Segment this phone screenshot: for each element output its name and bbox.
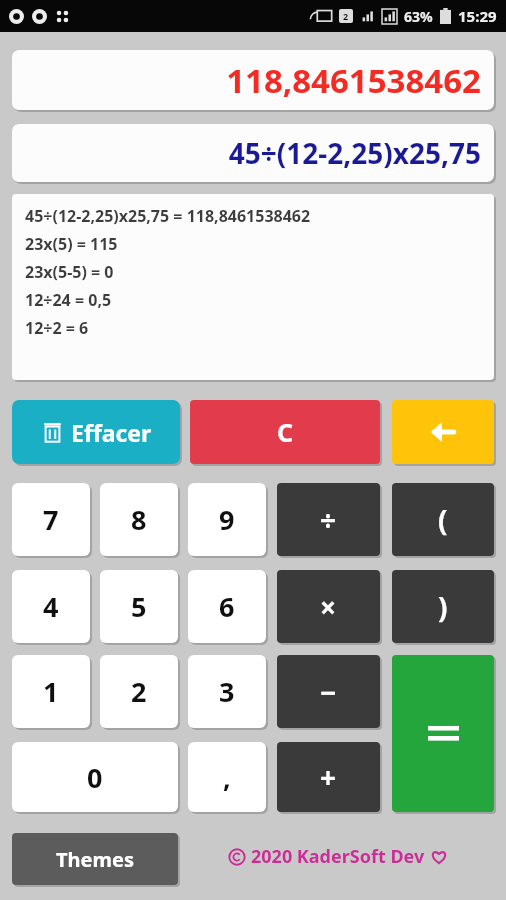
staticText: 23x(5-5) = 0 (25, 261, 114, 283)
staticText: , (223, 759, 231, 796)
staticText: 63% (404, 7, 433, 26)
button[interactable]: × (277, 570, 380, 643)
button[interactable]: − (277, 655, 380, 728)
staticText: 2 (131, 673, 147, 710)
button[interactable]: Themes (12, 833, 178, 885)
staticText: 45÷(12-2,25)x25,75 (12, 134, 481, 172)
button[interactable]: 5 (100, 570, 178, 643)
staticText: + (320, 758, 337, 796)
staticText: × (320, 588, 337, 626)
staticText: 3 (219, 673, 235, 710)
button[interactable]: 0 (12, 742, 178, 812)
button[interactable]: + (277, 742, 380, 812)
button[interactable]: ÷ (277, 483, 380, 556)
button[interactable]: Effacer (12, 400, 180, 464)
staticText: 12÷24 = 0,5 (25, 289, 112, 311)
button[interactable]: Equals (392, 655, 494, 812)
button[interactable]: ( (392, 483, 494, 556)
staticText: 4 (43, 588, 59, 625)
staticText: 12÷2 = 6 (25, 317, 89, 339)
button[interactable]: 3 (188, 655, 266, 728)
staticText: 9 (219, 501, 235, 538)
staticText: 1 (43, 673, 59, 710)
staticText: ) (438, 588, 448, 626)
staticText: 0 (87, 759, 103, 796)
staticText: Effacer (71, 417, 152, 448)
staticText: 2 (343, 10, 349, 22)
staticText: ÷ (320, 501, 337, 539)
staticText: 45÷(12-2,25)x25,75 = 118,8461538462 (25, 205, 311, 227)
staticText: 5 (131, 588, 147, 625)
staticText: 7 (43, 501, 59, 538)
button[interactable]: 1 (12, 655, 90, 728)
staticText: − (320, 673, 337, 711)
staticText: 8 (131, 501, 147, 538)
button[interactable]: 2020 KaderSoft Dev (228, 844, 448, 869)
button[interactable]: C (190, 400, 380, 464)
staticText: 2020 KaderSoft Dev (251, 844, 425, 869)
staticText: 23x(5) = 115 (25, 233, 118, 255)
staticText: C (277, 415, 294, 449)
button[interactable]: Backspace (392, 400, 494, 464)
staticText: ( (438, 501, 448, 539)
button[interactable]: 4 (12, 570, 90, 643)
button[interactable]: 2 (100, 655, 178, 728)
staticText: 118,8461538462 (12, 58, 481, 103)
button[interactable]: 8 (100, 483, 178, 556)
button[interactable]: 7 (12, 483, 90, 556)
staticText: 15:29 (458, 6, 497, 26)
button[interactable]: 9 (188, 483, 266, 556)
staticText: 6 (219, 588, 235, 625)
button[interactable]: ) (392, 570, 494, 643)
staticText: Themes (56, 846, 134, 873)
button[interactable]: 6 (188, 570, 266, 643)
button[interactable]: , (188, 742, 266, 812)
